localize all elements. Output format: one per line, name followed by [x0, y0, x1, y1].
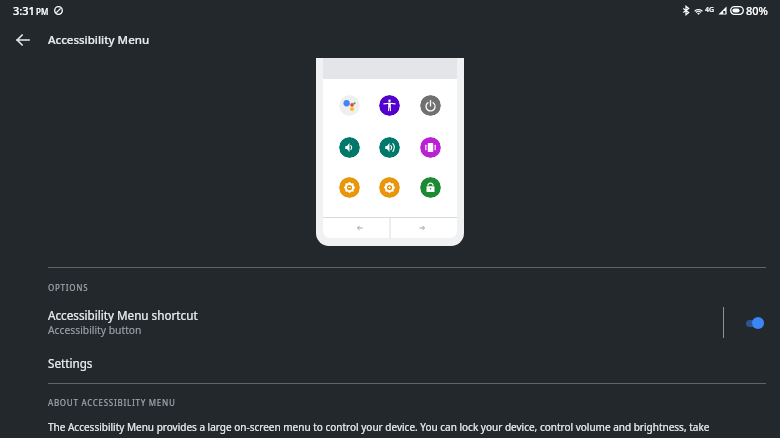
button[interactable]: Brightness down: [339, 177, 360, 198]
button[interactable]: Assistant: [339, 95, 360, 116]
staticText: The Accessibility Menu provides a large …: [48, 420, 766, 438]
staticText: ABOUT ACCESSIBILITY MENU: [48, 397, 176, 408]
button[interactable]: Volume down: [339, 137, 360, 158]
button[interactable]: Volume up: [379, 137, 400, 158]
staticText: Settings: [48, 355, 93, 371]
button[interactable]: Accessibility Menu shortcut toggle: [740, 313, 770, 333]
button[interactable]: Brightness up: [379, 177, 400, 198]
button[interactable]: Back: [8, 25, 38, 55]
staticText: PM: [36, 6, 49, 17]
button[interactable]: Settings: [0, 343, 780, 383]
button[interactable]: Lock screen: [420, 177, 441, 198]
staticText: 3:31: [13, 3, 35, 18]
staticText: Accessibility Menu shortcut: [48, 307, 198, 323]
staticText: 80%: [746, 3, 768, 18]
button[interactable]: Power: [420, 95, 441, 116]
button[interactable]: Next: [390, 217, 457, 238]
staticText: Accessibility button: [48, 323, 142, 337]
button[interactable]: Previous: [323, 217, 390, 238]
button[interactable]: Accessibility: [379, 95, 400, 116]
staticText: OPTIONS: [48, 282, 89, 293]
button[interactable]: Vibrate: [420, 137, 441, 158]
button[interactable]: Accessibility Menu shortcut: [0, 301, 780, 343]
staticText: 4G: [705, 5, 715, 15]
staticText: Accessibility Menu: [48, 32, 150, 48]
